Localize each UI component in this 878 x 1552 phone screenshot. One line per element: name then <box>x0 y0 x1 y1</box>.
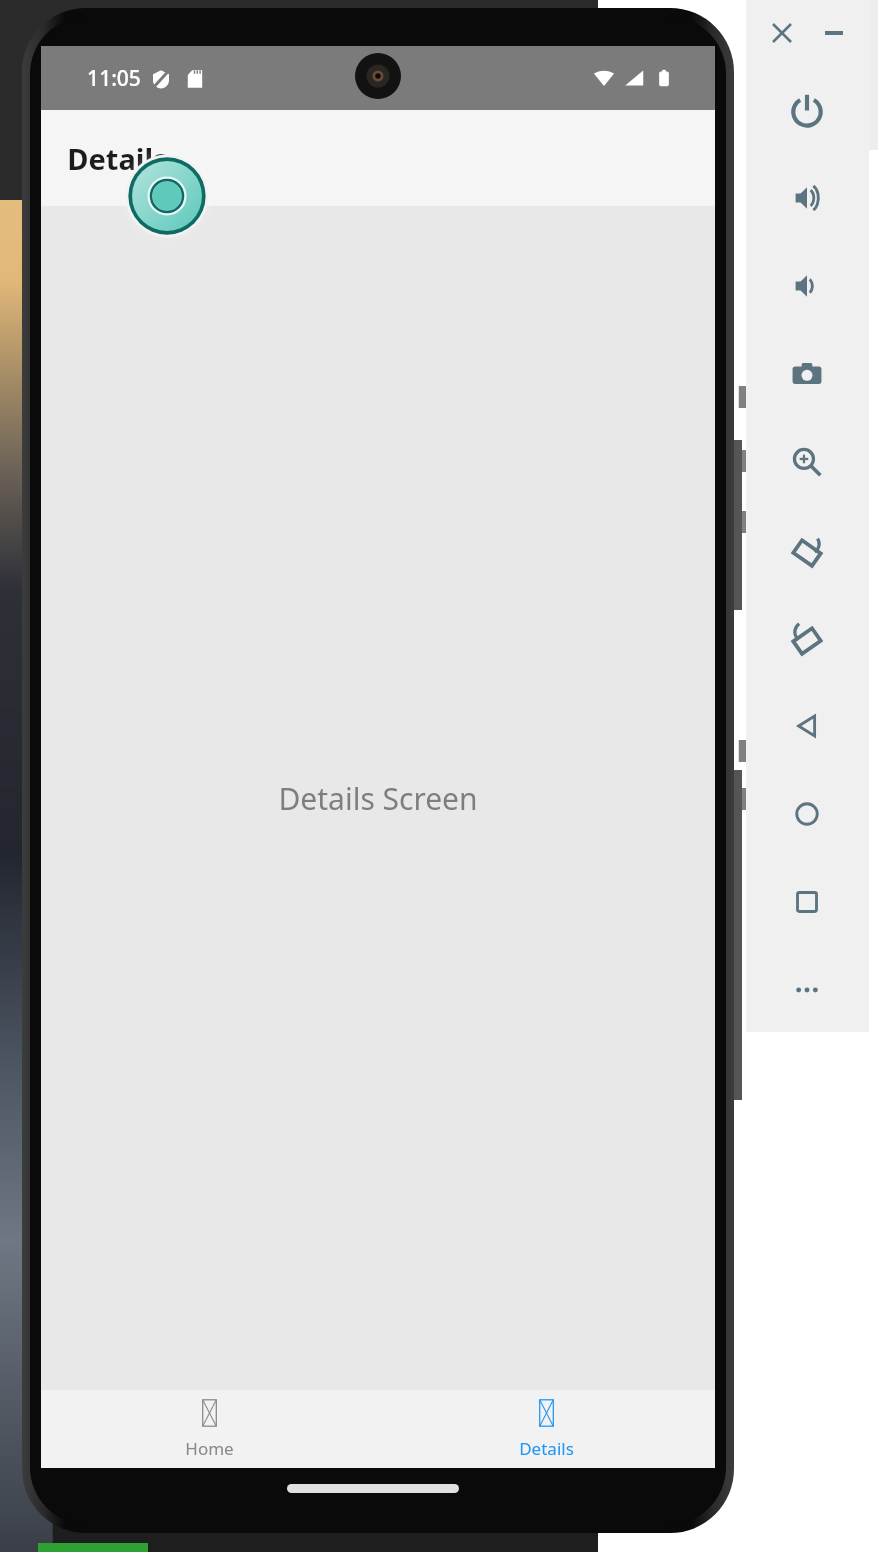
button[interactable]: Power <box>775 78 839 142</box>
button[interactable]: Home <box>775 782 839 846</box>
button[interactable]: Rotate left <box>775 518 839 582</box>
button[interactable]: Details <box>378 1390 715 1468</box>
button[interactable]: Rotate right <box>775 606 839 670</box>
button[interactable]: Overview <box>775 870 839 934</box>
staticText: Home <box>185 1437 234 1460</box>
button[interactable]: Home <box>41 1390 378 1468</box>
button[interactable]: Back <box>775 694 839 758</box>
button[interactable]: Volume down <box>775 254 839 318</box>
button[interactable]: Close <box>765 16 799 50</box>
staticText: Details <box>519 1437 574 1460</box>
staticText: Details Screen <box>278 778 478 819</box>
button[interactable]: More <box>775 958 839 1022</box>
button[interactable]: Screenshot <box>775 342 839 406</box>
staticText: Details <box>67 139 168 178</box>
button[interactable]: Minimize <box>817 16 851 50</box>
staticText: 11:05 <box>87 64 141 93</box>
button[interactable]: Volume up <box>775 166 839 230</box>
button[interactable]: Zoom <box>775 430 839 494</box>
